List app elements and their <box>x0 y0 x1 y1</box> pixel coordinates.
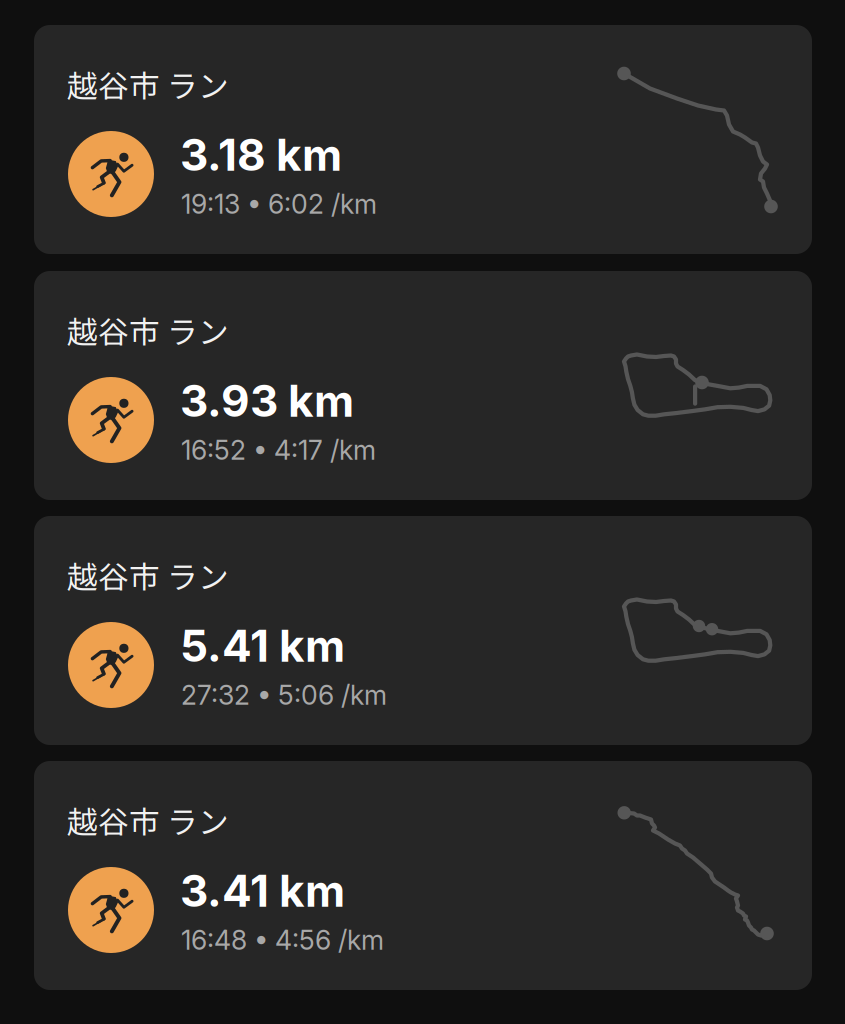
staticText: 5.41 km <box>180 619 345 672</box>
button[interactable]: 越谷市 ラン <box>34 271 812 500</box>
staticText: 3.18 km <box>180 128 342 181</box>
staticText: 3.41 km <box>180 864 345 917</box>
staticText: 越谷市 ラン <box>67 553 229 597</box>
staticText: 越谷市 ラン <box>67 62 229 106</box>
staticText: 3.93 km <box>180 374 354 427</box>
staticText: 16:48 • 4:56 /km <box>181 924 384 956</box>
staticText: 越谷市 ラン <box>67 308 229 352</box>
button[interactable]: 越谷市 ラン <box>34 761 812 990</box>
button[interactable]: 越谷市 ラン <box>34 25 812 254</box>
staticText: 27:32 • 5:06 /km <box>181 679 387 711</box>
staticText: 越谷市 ラン <box>67 798 229 842</box>
staticText: 16:52 • 4:17 /km <box>181 434 376 466</box>
button[interactable]: 越谷市 ラン <box>34 516 812 745</box>
staticText: 19:13 • 6:02 /km <box>181 188 377 220</box>
